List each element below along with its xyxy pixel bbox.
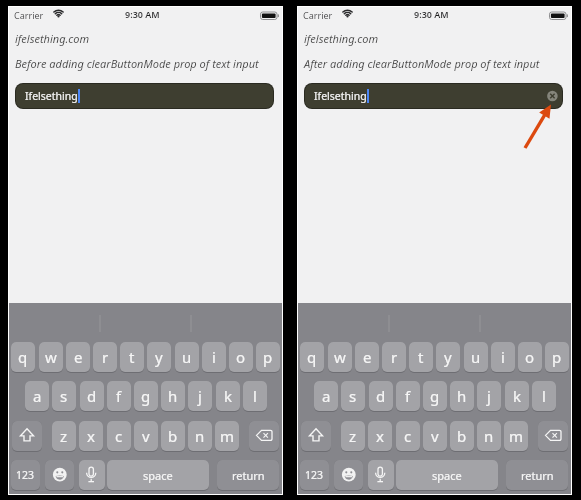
staticText: h: [457, 386, 467, 406]
staticText: b: [457, 426, 467, 446]
staticText: d: [87, 386, 97, 406]
staticText: c: [115, 426, 123, 446]
staticText: ifelsething.com: [15, 31, 90, 46]
staticText: t: [129, 347, 135, 367]
staticText: p: [263, 347, 273, 367]
staticText: n: [195, 426, 205, 446]
staticText: h: [168, 386, 178, 406]
staticText: w: [45, 347, 57, 367]
staticText: e: [363, 347, 372, 367]
staticText: ifelsething.com: [304, 31, 379, 46]
staticText: o: [525, 347, 535, 367]
staticText: f: [405, 386, 411, 406]
staticText: a: [33, 386, 42, 406]
staticText: space: [143, 468, 173, 483]
staticText: o: [236, 347, 246, 367]
staticText: w: [334, 347, 346, 367]
staticText: m: [509, 426, 524, 446]
staticText: r: [391, 347, 398, 367]
staticText: u: [471, 347, 481, 367]
staticText: u: [182, 347, 192, 367]
staticText: Ifelsething: [314, 89, 367, 103]
staticText: y: [155, 347, 163, 367]
staticText: s: [349, 386, 357, 406]
staticText: t: [418, 347, 424, 367]
staticText: z: [349, 426, 357, 446]
staticText: m: [220, 426, 235, 446]
staticText: v: [431, 426, 439, 446]
staticText: b: [168, 426, 178, 446]
staticText: Before adding clearButtonMode prop of te…: [15, 56, 259, 71]
staticText: l: [253, 386, 257, 406]
staticText: g: [141, 386, 151, 406]
staticText: j: [487, 386, 491, 406]
staticText: y: [444, 347, 452, 367]
staticText: i: [501, 347, 505, 367]
staticText: 9:30 AM: [125, 8, 160, 20]
staticText: e: [74, 347, 83, 367]
staticText: return: [521, 468, 554, 483]
staticText: g: [430, 386, 440, 406]
staticText: r: [102, 347, 109, 367]
staticText: 9:30 AM: [414, 8, 449, 20]
staticText: f: [116, 386, 122, 406]
staticText: x: [376, 426, 384, 446]
staticText: d: [376, 386, 386, 406]
staticText: s: [60, 386, 68, 406]
staticText: Carrier: [303, 9, 333, 21]
staticText: z: [60, 426, 68, 446]
staticText: 123: [16, 468, 35, 482]
staticText: a: [322, 386, 331, 406]
staticText: 123: [305, 468, 324, 482]
staticText: space: [432, 468, 462, 483]
staticText: j: [198, 386, 202, 406]
staticText: return: [232, 468, 265, 483]
staticText: k: [513, 386, 522, 406]
staticText: x: [87, 426, 95, 446]
staticText: v: [142, 426, 150, 446]
staticText: c: [404, 426, 412, 446]
staticText: p: [552, 347, 562, 367]
staticText: n: [484, 426, 494, 446]
staticText: i: [212, 347, 216, 367]
staticText: After adding clearButtonMode prop of tex…: [304, 56, 540, 71]
staticText: q: [18, 347, 28, 367]
staticText: Ifelsething: [25, 89, 78, 103]
staticText: q: [307, 347, 317, 367]
staticText: k: [224, 386, 233, 406]
staticText: l: [542, 386, 546, 406]
staticText: Carrier: [14, 9, 44, 21]
